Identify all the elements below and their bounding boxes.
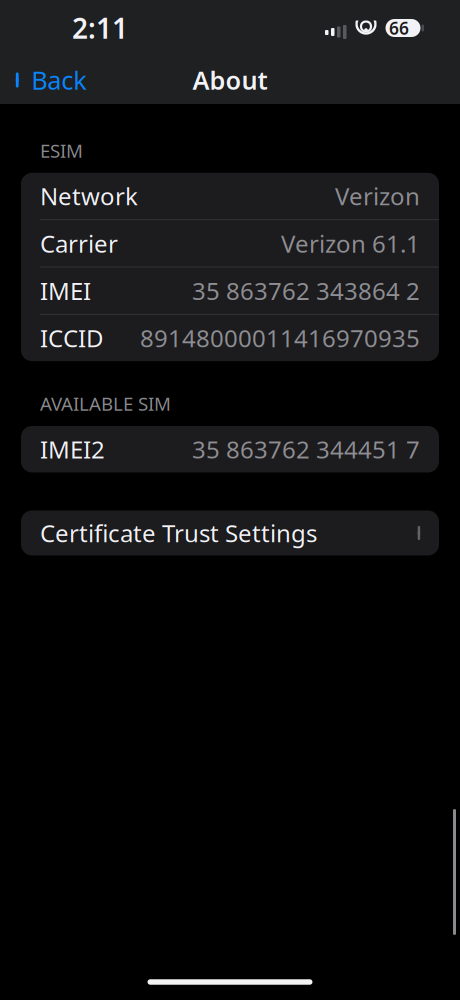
staticText: 35 863762 343864 2 [192, 275, 420, 307]
staticText: Network [40, 180, 138, 212]
staticText: 66 [389, 16, 409, 39]
staticText: IMEI [40, 275, 91, 307]
staticText: 35 863762 344451 7 [192, 433, 420, 465]
staticText: ICCID [40, 322, 104, 354]
staticText: Verizon [335, 180, 420, 212]
button[interactable]: Back [0, 55, 99, 105]
button[interactable]: Certificate Trust Settings [21, 510, 439, 555]
staticText: 89148000011416970935 [140, 322, 420, 354]
staticText: ESIM [40, 138, 83, 163]
staticText: Verizon 61.1 [281, 227, 420, 259]
staticText: About [192, 63, 267, 97]
staticText: Certificate Trust Settings [40, 517, 317, 549]
staticText: Back [31, 63, 87, 97]
staticText: 2:11 [72, 9, 128, 47]
staticText: AVAILABLE SIM [40, 391, 171, 416]
staticText: Carrier [40, 227, 118, 259]
staticText: IMEI2 [40, 433, 105, 465]
